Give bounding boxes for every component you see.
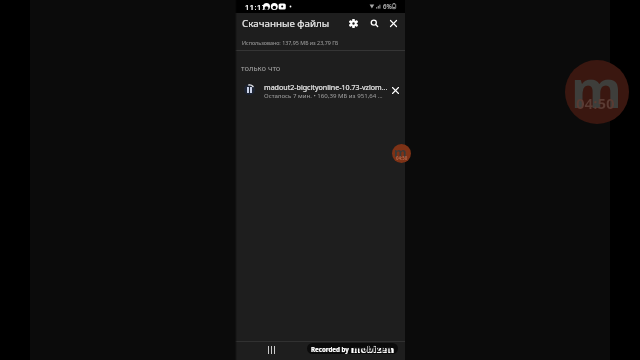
staticText: Скачанные файлы (242, 17, 330, 30)
button[interactable]: Close (383, 13, 403, 33)
button[interactable]: madout2-bigcityonline-10.73-vzlom… (235, 78, 405, 102)
staticText: 6% (383, 2, 392, 10)
staticText: только что (241, 63, 281, 73)
staticText: Использовано: 137,95 МБ из 23,79 ГБ (242, 39, 339, 46)
staticText: Осталось 7 мин. • 160,39 МБ из 951,64 … (264, 91, 388, 99)
staticText: 11:17 (245, 2, 267, 12)
staticText: Recorded by (311, 345, 351, 353)
staticText: 04:50 (396, 155, 408, 161)
staticText: m (394, 144, 407, 161)
staticText: m (571, 60, 622, 116)
staticText: 04:50 (576, 93, 615, 113)
button[interactable]: Cancel download (385, 80, 405, 100)
button[interactable]: MobiZen floating button (392, 144, 411, 163)
staticText: madout2-bigcityonline-10.73-vzlom… (264, 82, 388, 92)
button[interactable]: Settings (343, 13, 363, 33)
staticText: mobizen (353, 343, 393, 354)
button[interactable]: MobiZen recorder (565, 60, 629, 124)
staticText: mobizen (351, 343, 395, 354)
button[interactable]: Search (364, 13, 384, 33)
